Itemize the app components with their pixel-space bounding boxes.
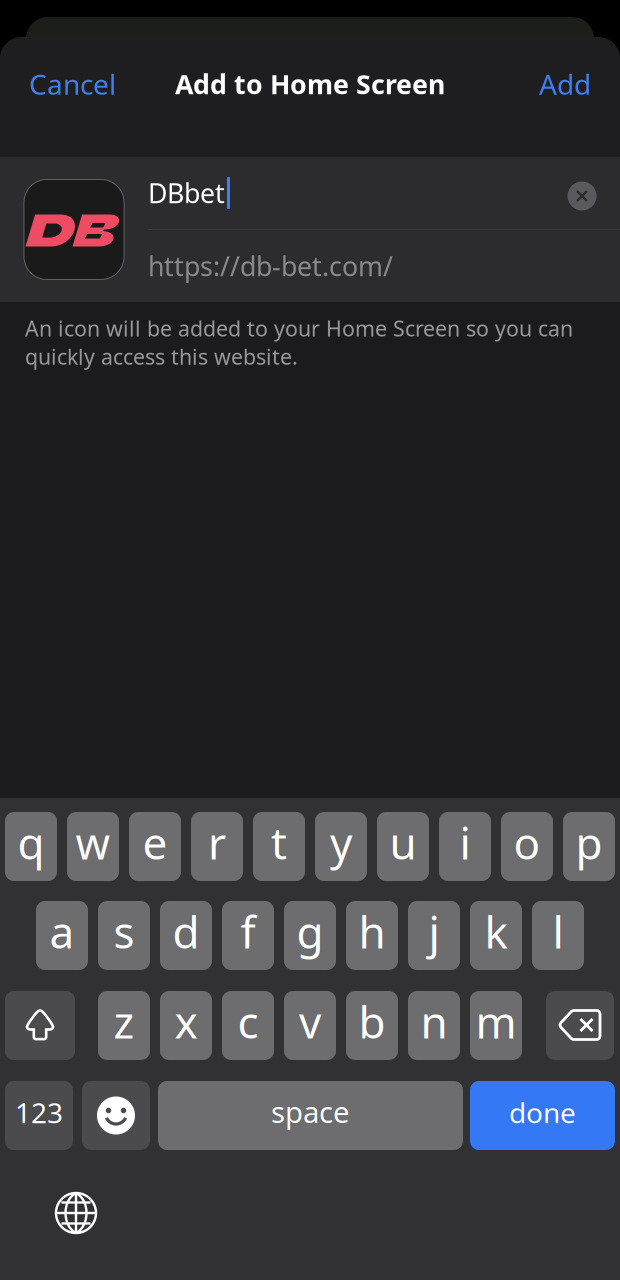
button[interactable]: Clear text bbox=[562, 171, 606, 215]
staticText: n bbox=[420, 992, 447, 1051]
button[interactable]: v bbox=[284, 991, 336, 1060]
staticText: Cancel bbox=[29, 65, 116, 103]
button[interactable]: b bbox=[346, 991, 398, 1060]
staticText: Add bbox=[539, 65, 591, 103]
button[interactable]: i bbox=[439, 812, 491, 881]
button[interactable]: Shift bbox=[5, 991, 75, 1060]
staticText: x bbox=[174, 992, 197, 1051]
staticText: s bbox=[113, 902, 134, 961]
staticText: y bbox=[330, 813, 352, 872]
button[interactable]: y bbox=[315, 812, 367, 881]
button[interactable]: n bbox=[408, 991, 460, 1060]
button[interactable]: Emoji bbox=[82, 1081, 150, 1150]
staticText: done bbox=[509, 1094, 576, 1131]
button[interactable]: w bbox=[67, 812, 119, 881]
button[interactable]: j bbox=[408, 901, 460, 970]
button[interactable]: p bbox=[563, 812, 615, 881]
staticText: w bbox=[75, 813, 110, 872]
staticText: Add to Home Screen bbox=[175, 66, 445, 102]
staticText: p bbox=[575, 813, 602, 872]
button[interactable]: h bbox=[346, 901, 398, 970]
staticText: 123 bbox=[15, 1094, 63, 1131]
staticText: q bbox=[17, 813, 44, 872]
button[interactable]: k bbox=[470, 901, 522, 970]
button[interactable]: Space bbox=[158, 1081, 463, 1150]
staticText: An icon will be added to your Home Scree… bbox=[25, 314, 573, 371]
staticText: c bbox=[237, 992, 258, 1051]
button[interactable]: Next keyboard bbox=[54, 1191, 98, 1235]
button[interactable]: Done bbox=[470, 1081, 615, 1150]
button[interactable]: a bbox=[36, 901, 88, 970]
button[interactable]: c bbox=[222, 991, 274, 1060]
button[interactable]: f bbox=[222, 901, 274, 970]
staticText: i bbox=[459, 813, 470, 872]
button[interactable]: t bbox=[253, 812, 305, 881]
staticText: https://db-bet.com/ bbox=[148, 248, 393, 284]
button[interactable]: Cancel bbox=[25, 55, 120, 113]
staticText: j bbox=[428, 902, 439, 961]
staticText: h bbox=[358, 902, 385, 961]
staticText: o bbox=[513, 813, 540, 872]
button[interactable]: Add bbox=[535, 55, 595, 113]
staticText: e bbox=[142, 813, 167, 872]
button[interactable]: u bbox=[377, 812, 429, 881]
staticText: z bbox=[113, 992, 134, 1051]
button[interactable]: d bbox=[160, 901, 212, 970]
button[interactable]: o bbox=[501, 812, 553, 881]
staticText: k bbox=[484, 902, 507, 961]
button[interactable]: z bbox=[98, 991, 150, 1060]
staticText: b bbox=[358, 992, 385, 1051]
button[interactable]: e bbox=[129, 812, 181, 881]
staticText: a bbox=[49, 902, 74, 961]
staticText: l bbox=[552, 902, 563, 961]
staticText: DBbet bbox=[148, 175, 225, 211]
staticText: space bbox=[271, 1092, 350, 1131]
button[interactable]: q bbox=[5, 812, 57, 881]
button[interactable]: x bbox=[160, 991, 212, 1060]
staticText: d bbox=[172, 902, 199, 961]
button[interactable]: r bbox=[191, 812, 243, 881]
staticText: f bbox=[240, 902, 255, 961]
button[interactable]: Numbers bbox=[5, 1081, 73, 1150]
button[interactable]: m bbox=[470, 991, 522, 1060]
staticText: g bbox=[296, 902, 323, 961]
button[interactable]: Delete bbox=[546, 991, 614, 1060]
staticText: v bbox=[299, 992, 321, 1051]
button[interactable]: l bbox=[532, 901, 584, 970]
button[interactable]: g bbox=[284, 901, 336, 970]
staticText: r bbox=[208, 813, 226, 872]
button[interactable]: s bbox=[98, 901, 150, 970]
staticText: m bbox=[475, 992, 516, 1051]
staticText: t bbox=[271, 813, 287, 872]
staticText: u bbox=[389, 813, 416, 872]
